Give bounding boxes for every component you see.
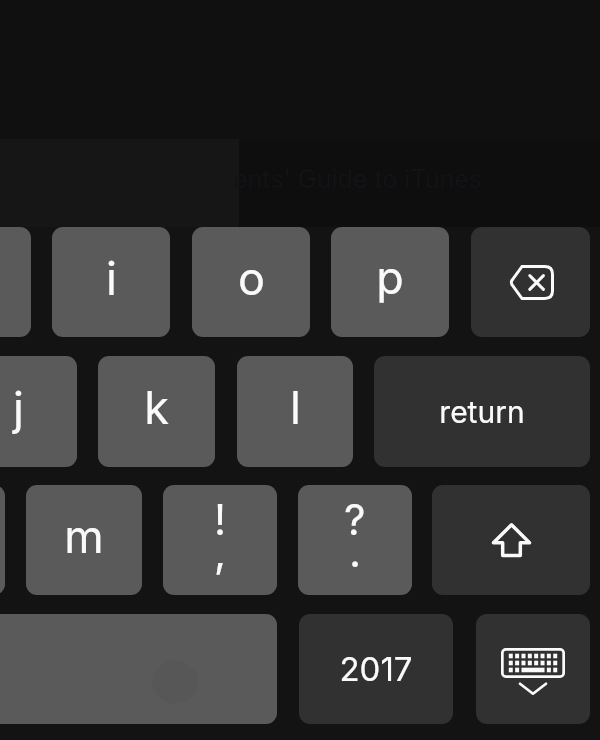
- staticText: j: [13, 381, 24, 435]
- button[interactable]: [0, 227, 31, 337]
- button[interactable]: l: [237, 356, 353, 467]
- button[interactable]: Shift: [432, 485, 590, 595]
- staticText: m: [64, 509, 104, 563]
- staticText: ,: [214, 526, 227, 577]
- button[interactable]: j: [0, 356, 77, 467]
- button[interactable]: i: [52, 227, 170, 337]
- staticText: k: [144, 380, 169, 434]
- button[interactable]: m: [26, 485, 142, 595]
- button[interactable]: !: [163, 485, 277, 595]
- staticText: i: [106, 251, 117, 305]
- staticText: .: [349, 526, 362, 577]
- button[interactable]: return: [374, 356, 590, 467]
- staticText: ?: [344, 494, 366, 545]
- staticText: p: [376, 250, 404, 304]
- button[interactable]: k: [98, 356, 215, 467]
- staticText: o: [238, 251, 265, 305]
- staticText: !: [214, 494, 227, 545]
- button[interactable]: [0, 485, 5, 595]
- button[interactable]: Backspace: [471, 227, 590, 337]
- button[interactable]: p: [331, 227, 449, 337]
- staticText: 2017: [339, 649, 413, 689]
- button[interactable]: o: [192, 227, 310, 337]
- staticText: return: [439, 394, 525, 430]
- button[interactable]: ?: [298, 485, 412, 595]
- button[interactable]: Hide keyboard: [476, 614, 590, 724]
- button[interactable]: 2017: [299, 614, 453, 724]
- staticText: l: [290, 380, 301, 434]
